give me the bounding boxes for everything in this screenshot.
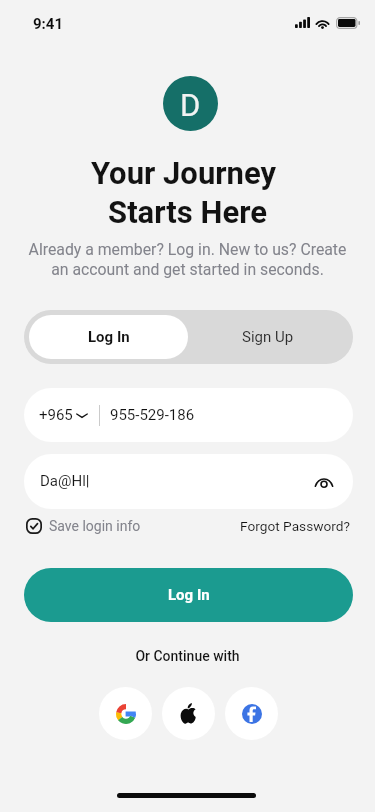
staticText: Forgot Password? — [240, 518, 351, 534]
staticText: D — [180, 87, 201, 123]
staticText: Or Continue with — [0, 648, 375, 664]
staticText: Log In — [168, 586, 210, 604]
button[interactable]: Save login info — [26, 514, 141, 538]
button[interactable]: Log In — [24, 568, 353, 622]
button[interactable]: Sign in with Facebook — [225, 687, 278, 740]
staticText: Sign Up — [242, 328, 294, 346]
staticText: +965 — [39, 406, 73, 424]
button[interactable]: Show password — [311, 469, 337, 495]
staticText: 955-529-186 — [110, 406, 195, 424]
button[interactable]: Sign in with Google — [99, 687, 152, 740]
staticText: Da@Hl| — [40, 472, 90, 490]
button[interactable]: Country code +965 — [39, 388, 88, 442]
button[interactable]: Sign Up — [188, 315, 348, 359]
staticText: Your Journey — [0, 155, 371, 191]
staticText: Save login info — [49, 518, 141, 534]
button[interactable]: Sign in with Apple — [162, 687, 215, 740]
button[interactable]: Forgot Password? — [240, 514, 351, 538]
staticText: Starts Here — [0, 194, 375, 230]
button[interactable]: Log In — [29, 315, 188, 359]
staticText: Already a member? Log in. New to us? Cre… — [0, 240, 375, 279]
staticText: Log In — [88, 328, 130, 346]
staticText: 9:41 — [33, 15, 64, 33]
